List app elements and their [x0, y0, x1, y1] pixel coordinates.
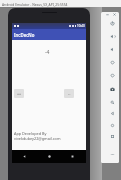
staticText: -4 [45, 49, 50, 56]
button[interactable]: Back [108, 109, 116, 117]
button[interactable]: ++ [14, 89, 24, 98]
button[interactable]: Rotate left [108, 58, 116, 66]
staticText: App Developed By [14, 131, 47, 136]
button[interactable]: Back [21, 153, 28, 160]
button[interactable]: Home [108, 121, 116, 129]
button[interactable]: Recent apps [69, 153, 76, 160]
button[interactable]: Rotate right [108, 71, 116, 79]
button[interactable]: -- [64, 89, 74, 98]
button[interactable]: Home [46, 153, 53, 160]
button[interactable]: Volume up [108, 32, 116, 40]
button[interactable]: Close [112, 12, 117, 17]
staticText: -- [68, 91, 71, 96]
button[interactable]: Overview [108, 132, 116, 140]
button[interactable]: More [108, 150, 116, 158]
button[interactable]: Minimize [105, 12, 110, 17]
staticText: 10:40 [77, 24, 85, 28]
button[interactable]: Zoom [108, 98, 116, 106]
staticText: Android Emulator - Nexus_5X_API_25:5554 [2, 2, 68, 6]
button[interactable]: Take screenshot [108, 85, 116, 93]
button[interactable]: Volume down [108, 45, 116, 53]
staticText: vivekdubey22@gmail.com [14, 136, 61, 141]
button[interactable]: Power [108, 19, 116, 27]
staticText: IncDecNo [14, 32, 35, 38]
staticText: ++ [17, 91, 22, 96]
